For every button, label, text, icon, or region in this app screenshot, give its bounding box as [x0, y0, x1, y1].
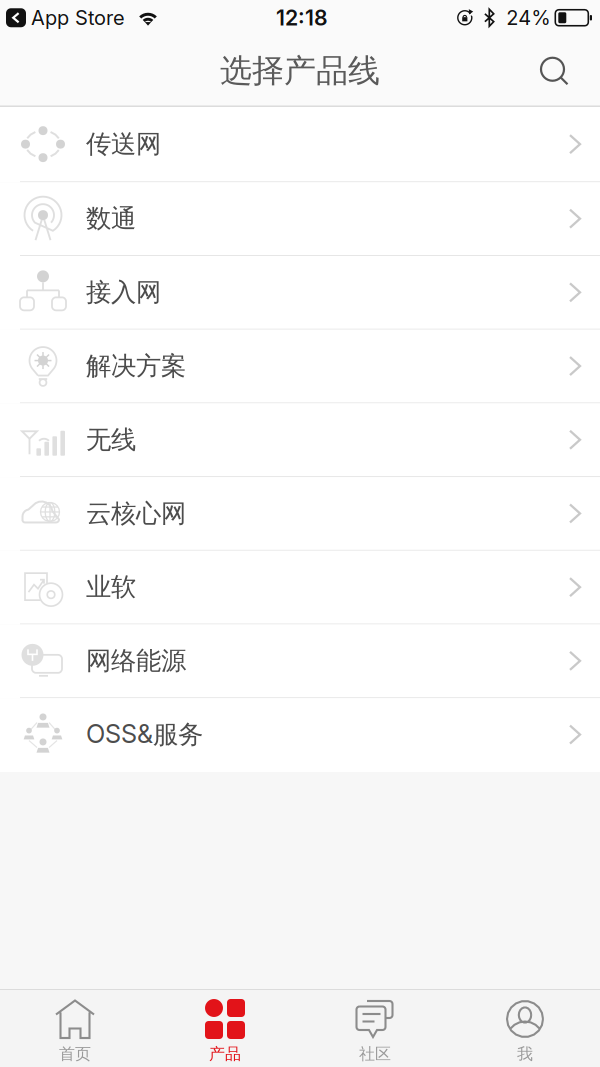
button[interactable]: 社区: [300, 990, 450, 1067]
button[interactable]: 解决方案: [0, 330, 600, 403]
staticText: 数通: [86, 203, 136, 234]
button[interactable]: 接入网: [0, 256, 600, 330]
button[interactable]: 传送网: [0, 107, 600, 182]
button[interactable]: 云核心网: [0, 477, 600, 551]
staticText: 我: [517, 1044, 533, 1064]
staticText: 首页: [59, 1044, 91, 1064]
staticText: 网络能源: [86, 645, 186, 676]
button[interactable]: 产品: [150, 990, 300, 1067]
button[interactable]: 网络能源: [0, 624, 600, 698]
button[interactable]: 首页: [0, 990, 150, 1067]
button[interactable]: OSS&服务: [0, 698, 600, 772]
button[interactable]: Back to App Store: [0, 6, 125, 30]
staticText: 业软: [86, 572, 136, 603]
button[interactable]: Search: [529, 46, 579, 96]
staticText: 12:18: [276, 5, 328, 30]
button[interactable]: 业软: [0, 551, 600, 624]
staticText: 社区: [359, 1044, 391, 1064]
staticText: 云核心网: [86, 498, 186, 529]
staticText: 接入网: [86, 277, 161, 308]
staticText: App Store: [31, 6, 125, 30]
staticText: 24%: [506, 6, 550, 30]
button[interactable]: 我: [450, 990, 600, 1067]
staticText: 选择产品线: [220, 51, 380, 90]
staticText: 传送网: [86, 129, 161, 160]
staticText: 产品: [209, 1044, 241, 1064]
button[interactable]: 数通: [0, 182, 600, 256]
staticText: 无线: [86, 424, 136, 455]
button[interactable]: 无线: [0, 403, 600, 477]
staticText: OSS&服务: [86, 719, 203, 750]
staticText: 解决方案: [86, 350, 186, 382]
